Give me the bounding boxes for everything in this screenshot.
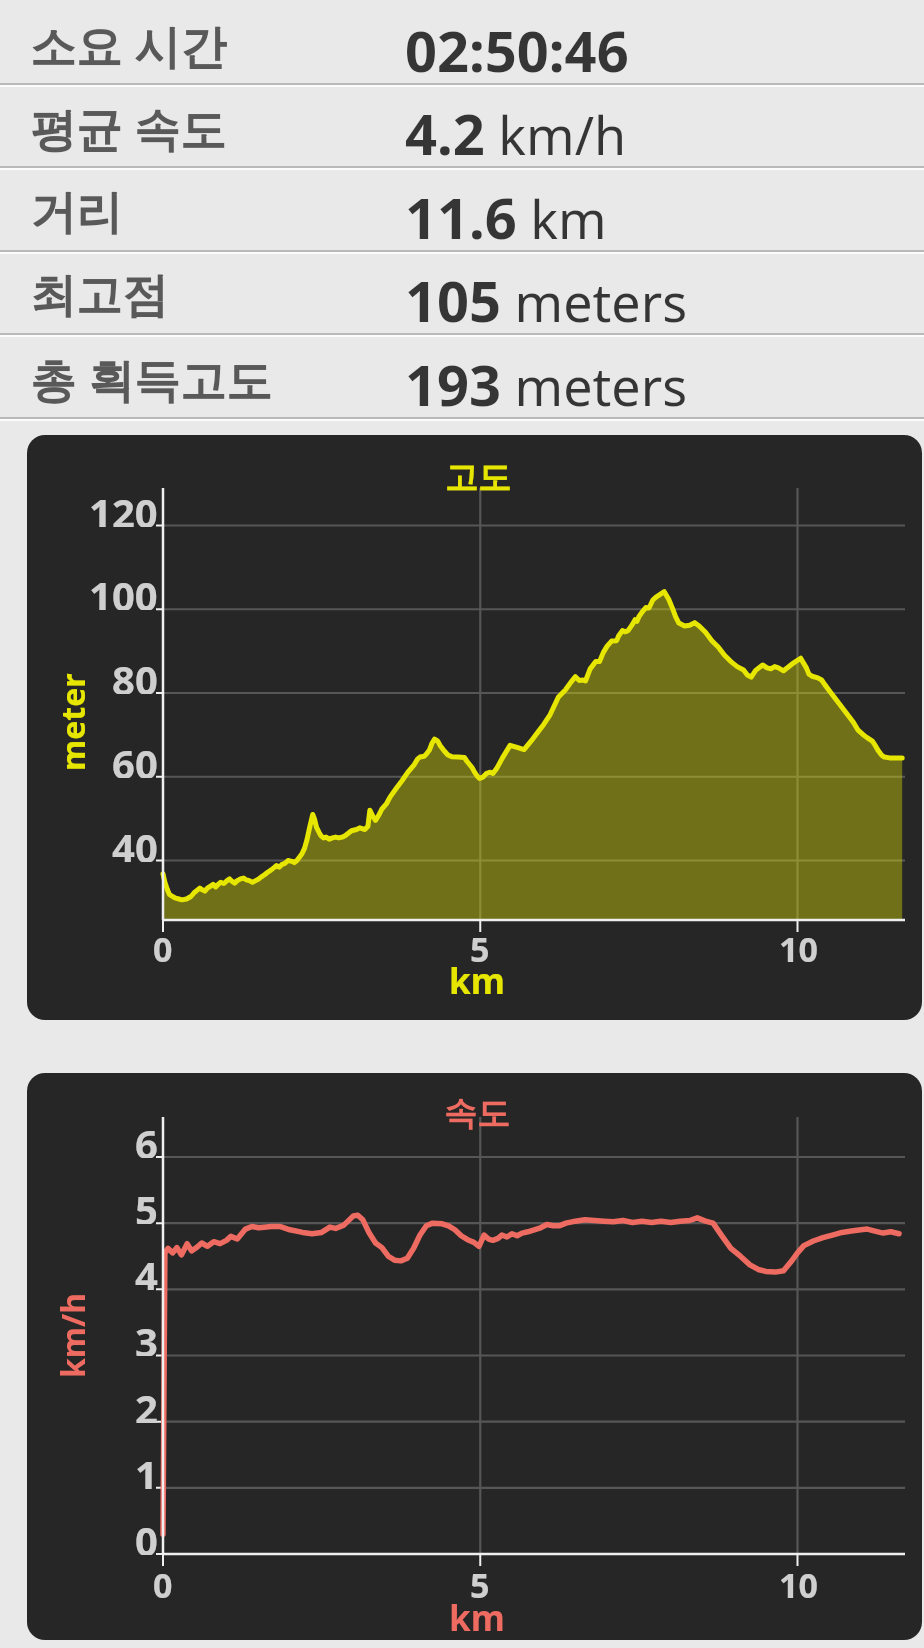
staticText: 0 [153,1562,173,1604]
staticText: km [449,1594,505,1640]
staticText: 고도 [445,457,511,499]
staticText: 40 [112,820,158,862]
staticText: 1 [135,1447,158,1489]
staticText: 120 [89,485,158,527]
staticText: 11.6 km [405,179,607,250]
staticText: 평균 속도 [30,97,226,160]
staticText: 100 [89,568,158,610]
button[interactable]: 거리 [0,167,924,250]
staticText: 총 획득고도 [30,348,272,411]
staticText: 10 [779,1562,818,1604]
staticText: 최고점 [30,267,168,325]
staticText: 80 [112,652,158,694]
staticText: 3 [135,1314,158,1356]
staticText: 0 [135,1513,158,1555]
button[interactable]: 평균 속도 [0,83,924,166]
staticText: km [449,957,505,1005]
button[interactable]: 최고점 [0,250,924,333]
button[interactable]: 소요 시간 [0,0,924,83]
button[interactable]: 총 획득고도 [0,334,924,417]
staticText: 02:50:46 [405,12,629,83]
staticText: 5 [470,1562,490,1604]
staticText: meter [51,673,95,771]
staticText: 속도 [444,1093,510,1135]
staticText: 거리 [30,184,122,242]
staticText: 2 [135,1381,158,1423]
staticText: 0 [153,926,173,968]
staticText: 4.2 km/h [405,95,627,166]
staticText: 60 [112,736,158,778]
staticText: 105 meters [405,262,688,333]
staticText: km/h [51,1292,95,1378]
staticText: 193 meters [405,346,688,417]
staticText: 소요 시간 [30,14,226,77]
staticText: 10 [779,926,818,968]
staticText: 5 [470,926,490,968]
staticText: 5 [135,1182,158,1224]
staticText: 6 [135,1116,158,1158]
staticText: 4 [135,1248,158,1290]
